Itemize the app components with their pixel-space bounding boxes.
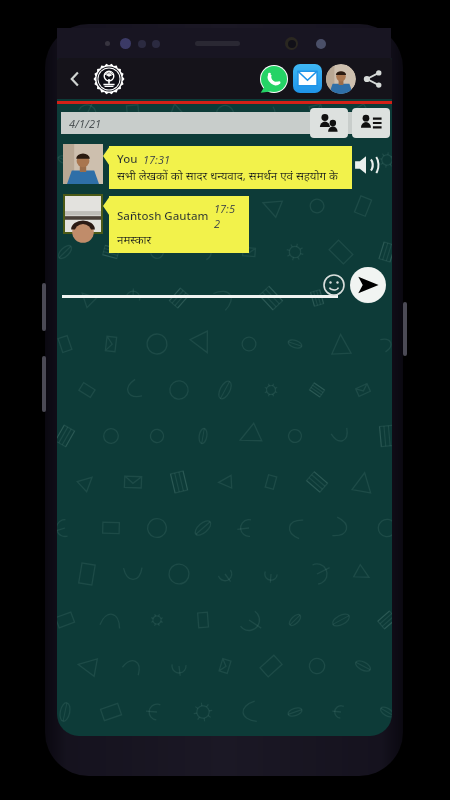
button[interactable]: You xyxy=(109,146,352,189)
button[interactable]: WhatsApp xyxy=(259,64,289,94)
button[interactable]: Logo xyxy=(93,63,125,95)
staticText: सभी लेखकों को सादर धन्यवाद, समर्थन एवं स… xyxy=(117,168,344,184)
staticText: 4/1/21 xyxy=(69,116,102,131)
button[interactable]: Contact list xyxy=(352,108,390,138)
staticText: 17:31 xyxy=(143,152,171,167)
button[interactable]: Emoji xyxy=(323,274,345,296)
button[interactable]: 4/1/21 xyxy=(61,112,352,134)
button[interactable]: Back xyxy=(63,67,87,91)
button[interactable]: Speaker xyxy=(353,152,379,178)
staticText: नमस्कार xyxy=(117,232,152,248)
button[interactable]: Share xyxy=(360,66,386,92)
button[interactable] xyxy=(62,272,338,298)
button[interactable]: Group members xyxy=(310,108,348,138)
button[interactable]: Avatar xyxy=(63,144,103,184)
staticText: 17:52 xyxy=(214,201,241,231)
staticText: Sañtosh Gautam xyxy=(117,208,209,224)
button[interactable]: Email xyxy=(293,64,322,93)
button[interactable]: Send xyxy=(350,267,386,303)
button[interactable]: Sañtosh Gautam xyxy=(109,196,249,253)
button[interactable]: Profile xyxy=(326,64,356,94)
staticText: You xyxy=(117,151,138,167)
button[interactable]: Avatar xyxy=(65,196,101,232)
